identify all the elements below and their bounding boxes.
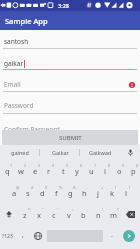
staticText: l bbox=[125, 188, 127, 198]
staticText: ( bbox=[115, 185, 117, 190]
button[interactable]: santosh bbox=[0, 34, 140, 48]
button[interactable]: u bbox=[84, 159, 98, 181]
staticText: 8 bbox=[108, 163, 111, 168]
staticText: : bbox=[72, 207, 73, 212]
staticText: & bbox=[73, 185, 76, 190]
staticText: ?123 bbox=[2, 233, 13, 240]
button[interactable]: Email bbox=[0, 77, 140, 91]
button[interactable]: j bbox=[91, 181, 105, 203]
button[interactable]: n bbox=[91, 203, 106, 225]
button[interactable]: . bbox=[105, 225, 118, 247]
button[interactable]: w bbox=[14, 159, 28, 181]
staticText: SUBMIT bbox=[59, 134, 82, 142]
button[interactable]: h bbox=[77, 181, 91, 203]
button[interactable]: Password bbox=[0, 98, 140, 114]
staticText: ) bbox=[129, 185, 131, 190]
staticText: v bbox=[67, 210, 71, 220]
staticText: i bbox=[104, 166, 106, 176]
button[interactable]: q bbox=[0, 159, 14, 181]
button[interactable]: g bbox=[63, 181, 77, 203]
button[interactable]: Shift bbox=[0, 203, 18, 225]
button[interactable]: r bbox=[42, 159, 56, 181]
staticText: % bbox=[59, 185, 62, 190]
staticText: $ bbox=[45, 185, 48, 190]
button[interactable]: SUBMIT bbox=[2, 130, 138, 145]
button[interactable]: ?123 bbox=[0, 225, 15, 247]
button[interactable]: m bbox=[106, 203, 121, 225]
staticText: r bbox=[47, 166, 51, 176]
button[interactable]: i bbox=[98, 159, 112, 181]
staticText: gaikar bbox=[4, 59, 24, 68]
button[interactable]: z bbox=[18, 203, 32, 225]
staticText: s bbox=[26, 188, 30, 198]
button[interactable]: o bbox=[112, 159, 126, 181]
staticText: + bbox=[101, 185, 104, 190]
staticText: f bbox=[55, 188, 58, 198]
staticText: y bbox=[75, 166, 79, 176]
staticText: Password bbox=[4, 101, 34, 110]
button[interactable]: Gaikwad bbox=[80, 145, 120, 159]
button[interactable]: f bbox=[49, 181, 63, 203]
staticText: w bbox=[18, 166, 24, 176]
button[interactable]: Backspace bbox=[121, 203, 140, 225]
staticText: . bbox=[111, 230, 113, 240]
button[interactable]: t bbox=[56, 159, 70, 181]
staticText: - bbox=[87, 185, 89, 190]
staticText: Email bbox=[4, 80, 21, 89]
staticText: k bbox=[110, 188, 115, 198]
button[interactable]: y bbox=[70, 159, 84, 181]
staticText: n bbox=[96, 210, 101, 220]
button[interactable]: k bbox=[105, 181, 119, 203]
staticText: o bbox=[117, 166, 122, 176]
staticText: j bbox=[97, 188, 99, 198]
staticText: ! bbox=[102, 207, 103, 212]
staticText: e bbox=[33, 166, 38, 176]
staticText: " bbox=[42, 207, 44, 212]
staticText: q bbox=[5, 166, 10, 176]
button[interactable]: x bbox=[32, 203, 46, 225]
button[interactable]: p bbox=[126, 159, 140, 181]
staticText: Gaikwad bbox=[89, 149, 112, 156]
staticText: 5 bbox=[66, 163, 69, 168]
button[interactable]: gained bbox=[0, 145, 40, 159]
staticText: p bbox=[131, 166, 136, 176]
button[interactable]: Confirm Password bbox=[0, 122, 140, 138]
staticText: 9 bbox=[122, 163, 125, 168]
button[interactable]: Voice input bbox=[120, 145, 140, 159]
staticText: Gaikar bbox=[52, 149, 69, 156]
button[interactable]: a bbox=[7, 181, 21, 203]
staticText: t bbox=[62, 166, 65, 176]
staticText: x bbox=[37, 210, 41, 220]
staticText: d bbox=[40, 188, 45, 198]
staticText: b bbox=[81, 210, 86, 220]
button[interactable]: b bbox=[76, 203, 91, 225]
staticText: 7 bbox=[94, 163, 97, 168]
staticText: ' bbox=[57, 207, 58, 212]
staticText: z bbox=[23, 210, 27, 220]
button[interactable]: d bbox=[35, 181, 49, 203]
staticText: , bbox=[22, 230, 24, 240]
button[interactable]: v bbox=[61, 203, 76, 225]
staticText: santosh bbox=[4, 37, 29, 46]
button[interactable]: Enter bbox=[123, 230, 135, 242]
button[interactable]: , bbox=[15, 225, 30, 247]
staticText: m bbox=[110, 210, 118, 220]
button[interactable]: gaikar bbox=[0, 56, 140, 70]
button[interactable]: s bbox=[21, 181, 35, 203]
staticText: 3:28 bbox=[58, 2, 69, 9]
staticText: a bbox=[12, 188, 17, 198]
staticText: 3 bbox=[38, 163, 41, 168]
button[interactable]: c bbox=[46, 203, 61, 225]
button[interactable]: Change keyboard language bbox=[30, 225, 45, 247]
staticText: u bbox=[89, 166, 94, 176]
staticText: 6 bbox=[80, 163, 83, 168]
button[interactable]: e bbox=[28, 159, 42, 181]
staticText: 2 bbox=[24, 163, 27, 168]
button[interactable]: l bbox=[119, 181, 133, 203]
staticText: 0 bbox=[136, 163, 139, 168]
button[interactable]: Gaikar bbox=[40, 145, 80, 159]
staticText: 1 bbox=[10, 163, 13, 168]
staticText: 4 bbox=[52, 163, 55, 168]
staticText: c bbox=[52, 210, 56, 220]
